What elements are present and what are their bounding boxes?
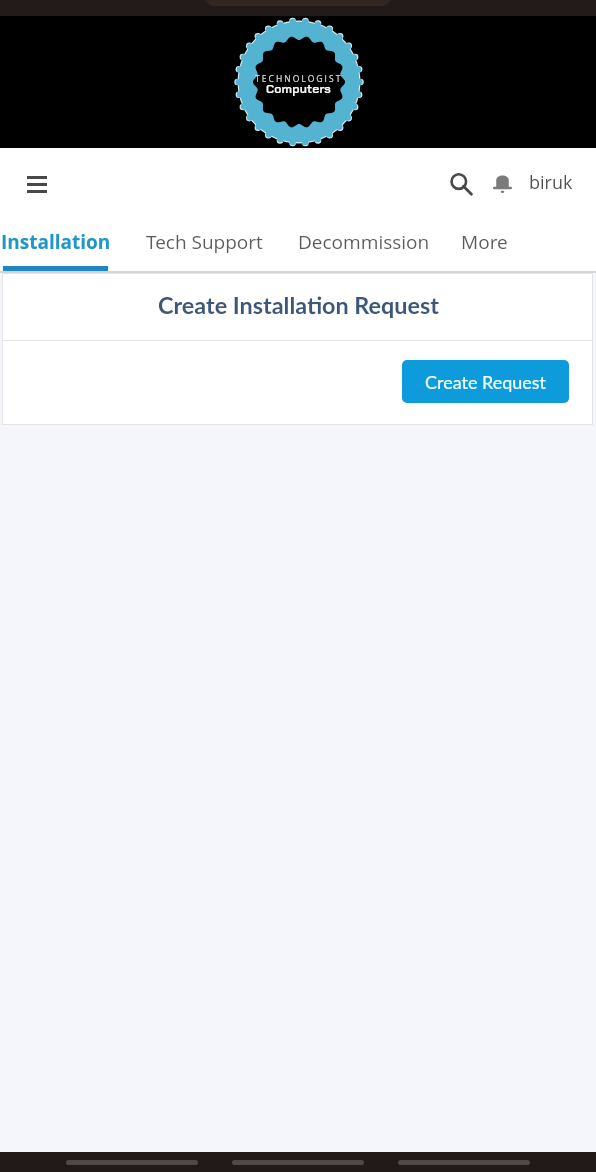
staticText: More [461, 229, 508, 255]
button[interactable]: Search [444, 167, 478, 201]
button[interactable]: Back [66, 1160, 198, 1165]
button[interactable]: Home [232, 1160, 364, 1165]
button[interactable]: Decommission [288, 212, 440, 268]
staticText: Tech Support [146, 229, 263, 255]
button[interactable]: Installation [0, 212, 121, 268]
staticText: biruk [529, 170, 573, 195]
button[interactable]: Create Request [402, 360, 569, 403]
staticText: Installation [1, 229, 111, 255]
staticText: Computers [266, 81, 332, 97]
button[interactable]: biruk [521, 164, 581, 200]
button[interactable]: Tech Support [136, 212, 273, 268]
staticText: Create Installation Request [158, 291, 439, 319]
staticText: Create Request [425, 371, 547, 393]
staticText: Decommission [298, 229, 430, 255]
staticText: TECHNOLOGIST [255, 73, 343, 85]
button[interactable]: Notifications [486, 167, 518, 199]
button[interactable]: Open navigation menu [17, 164, 57, 204]
button[interactable]: More [451, 212, 518, 268]
button[interactable]: Recents [398, 1160, 530, 1165]
